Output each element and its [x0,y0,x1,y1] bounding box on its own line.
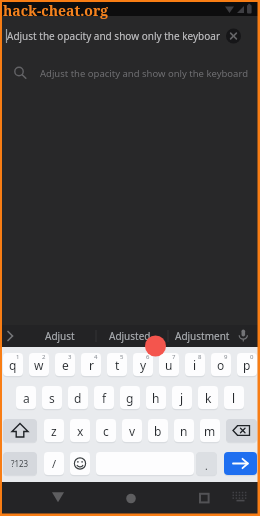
staticText: 3 [68,353,72,361]
button[interactable]: a [16,386,36,409]
staticText: o [217,357,225,373]
button[interactable]: y [133,353,153,376]
staticText: e [62,357,69,373]
staticText: t [115,357,120,373]
button[interactable] [224,452,257,475]
button[interactable]: z [44,419,64,442]
staticText: g [126,390,134,406]
staticText: 8 [198,353,202,361]
staticText: h [152,390,160,406]
button[interactable]: d [68,386,88,409]
button[interactable]: Adjust the opacity and show only the key… [0,16,260,56]
button[interactable]: s [42,386,62,409]
staticText: b [154,423,162,439]
button[interactable]: o [211,353,231,376]
button[interactable]: Adjustment [171,325,233,347]
staticText: q [9,357,17,373]
staticText: 0 [250,353,254,361]
staticText: x [77,423,84,439]
staticText: 2 [42,353,46,361]
staticText: 7 [172,353,176,361]
staticText: Adjusted [109,329,151,343]
button[interactable]: / [44,452,64,475]
button[interactable]: r [81,353,101,376]
button[interactable]: Adjusted [99,325,161,347]
button[interactable]: x [70,419,90,442]
staticText: Adjustment [175,329,230,343]
staticText: u [165,357,173,373]
button[interactable]: j [172,386,192,409]
staticText: j [180,390,184,406]
button[interactable]: ?123 [3,452,37,475]
staticText: i [193,357,197,373]
staticText: a [23,390,30,406]
staticText: ?123 [11,458,29,469]
button[interactable] [3,419,37,442]
button[interactable] [190,485,218,513]
staticText: n [180,423,188,439]
button[interactable]: p [237,353,257,376]
button[interactable]: k [198,386,218,409]
button[interactable]: g [120,386,140,409]
staticText: s [49,390,55,406]
button[interactable]: u [159,353,179,376]
button[interactable]: h [146,386,166,409]
staticText: d [74,390,82,406]
button[interactable]: q [3,353,23,376]
button[interactable]: i [185,353,205,376]
button[interactable]: e [55,353,75,376]
staticText: 1 [16,353,20,361]
staticText: 9 [224,353,228,361]
button[interactable]: f [94,386,114,409]
staticText: k [205,390,212,406]
button[interactable]: Adjust [30,325,90,347]
button[interactable]: m [200,419,220,442]
button[interactable] [226,419,257,442]
button[interactable]: l [224,386,244,409]
staticText: y [140,357,147,373]
staticText: z [51,423,57,439]
staticText: f [102,390,107,406]
staticText: hack-cheat.org [3,1,109,20]
staticText: / [52,456,57,471]
staticText: m [204,423,216,439]
staticText: c [103,423,109,439]
staticText: 6 [146,353,150,361]
staticText: v [129,423,136,439]
button[interactable]: v [122,419,142,442]
staticText: w [34,357,44,373]
button[interactable]: Adjust the opacity and show only the key… [0,56,260,90]
button[interactable] [70,452,90,475]
staticText: Adjust the opacity and show only the key… [40,67,249,80]
button[interactable] [228,485,254,513]
staticText: p [243,357,251,373]
button[interactable]: t [107,353,127,376]
button[interactable]: n [174,419,194,442]
button[interactable]: c [96,419,116,442]
staticText: . [205,459,208,473]
button[interactable]: . [196,452,217,475]
staticText: l [232,390,236,406]
staticText: 4 [94,353,98,361]
staticText: r [89,357,94,373]
button[interactable]: b [148,419,168,442]
staticText: Adjust the opacity and show only the key… [7,29,221,43]
button[interactable] [117,485,145,513]
staticText: Adjust [45,329,75,343]
staticText: 5 [120,353,124,361]
button[interactable] [44,485,72,513]
button[interactable]: w [29,353,49,376]
